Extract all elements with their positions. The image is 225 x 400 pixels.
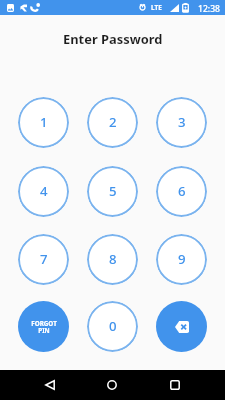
staticText: 7 bbox=[40, 250, 48, 268]
button[interactable]: Recent apps bbox=[164, 374, 186, 396]
button[interactable]: Backspace bbox=[156, 301, 207, 352]
staticText: Enter Password bbox=[63, 30, 163, 46]
button[interactable]: 2 bbox=[87, 97, 138, 148]
staticText: 6 bbox=[178, 182, 186, 200]
staticText: 1 bbox=[40, 113, 48, 131]
button[interactable]: FORGOT PIN bbox=[18, 301, 69, 352]
staticText: 0 bbox=[109, 317, 117, 335]
staticText: 12:38 bbox=[198, 3, 221, 15]
button[interactable]: 8 bbox=[87, 234, 138, 285]
staticText: FORGOT PIN bbox=[31, 319, 57, 335]
button[interactable]: 7 bbox=[18, 234, 69, 285]
button[interactable]: 6 bbox=[156, 166, 207, 217]
staticText: 9 bbox=[178, 250, 186, 268]
staticText: 3 bbox=[178, 113, 186, 131]
staticText: 8 bbox=[109, 250, 117, 268]
button[interactable]: Home bbox=[101, 374, 123, 396]
button[interactable]: 1 bbox=[18, 97, 69, 148]
staticText: LTE bbox=[151, 3, 162, 12]
staticText: 2 bbox=[109, 113, 117, 131]
button[interactable]: 4 bbox=[18, 166, 69, 217]
button[interactable]: 5 bbox=[87, 166, 138, 217]
button[interactable]: 0 bbox=[87, 301, 138, 352]
staticText: 4 bbox=[40, 182, 48, 200]
staticText: 5 bbox=[109, 182, 117, 200]
button[interactable]: Back bbox=[39, 374, 61, 396]
button[interactable]: 9 bbox=[156, 234, 207, 285]
button[interactable]: 3 bbox=[156, 97, 207, 148]
